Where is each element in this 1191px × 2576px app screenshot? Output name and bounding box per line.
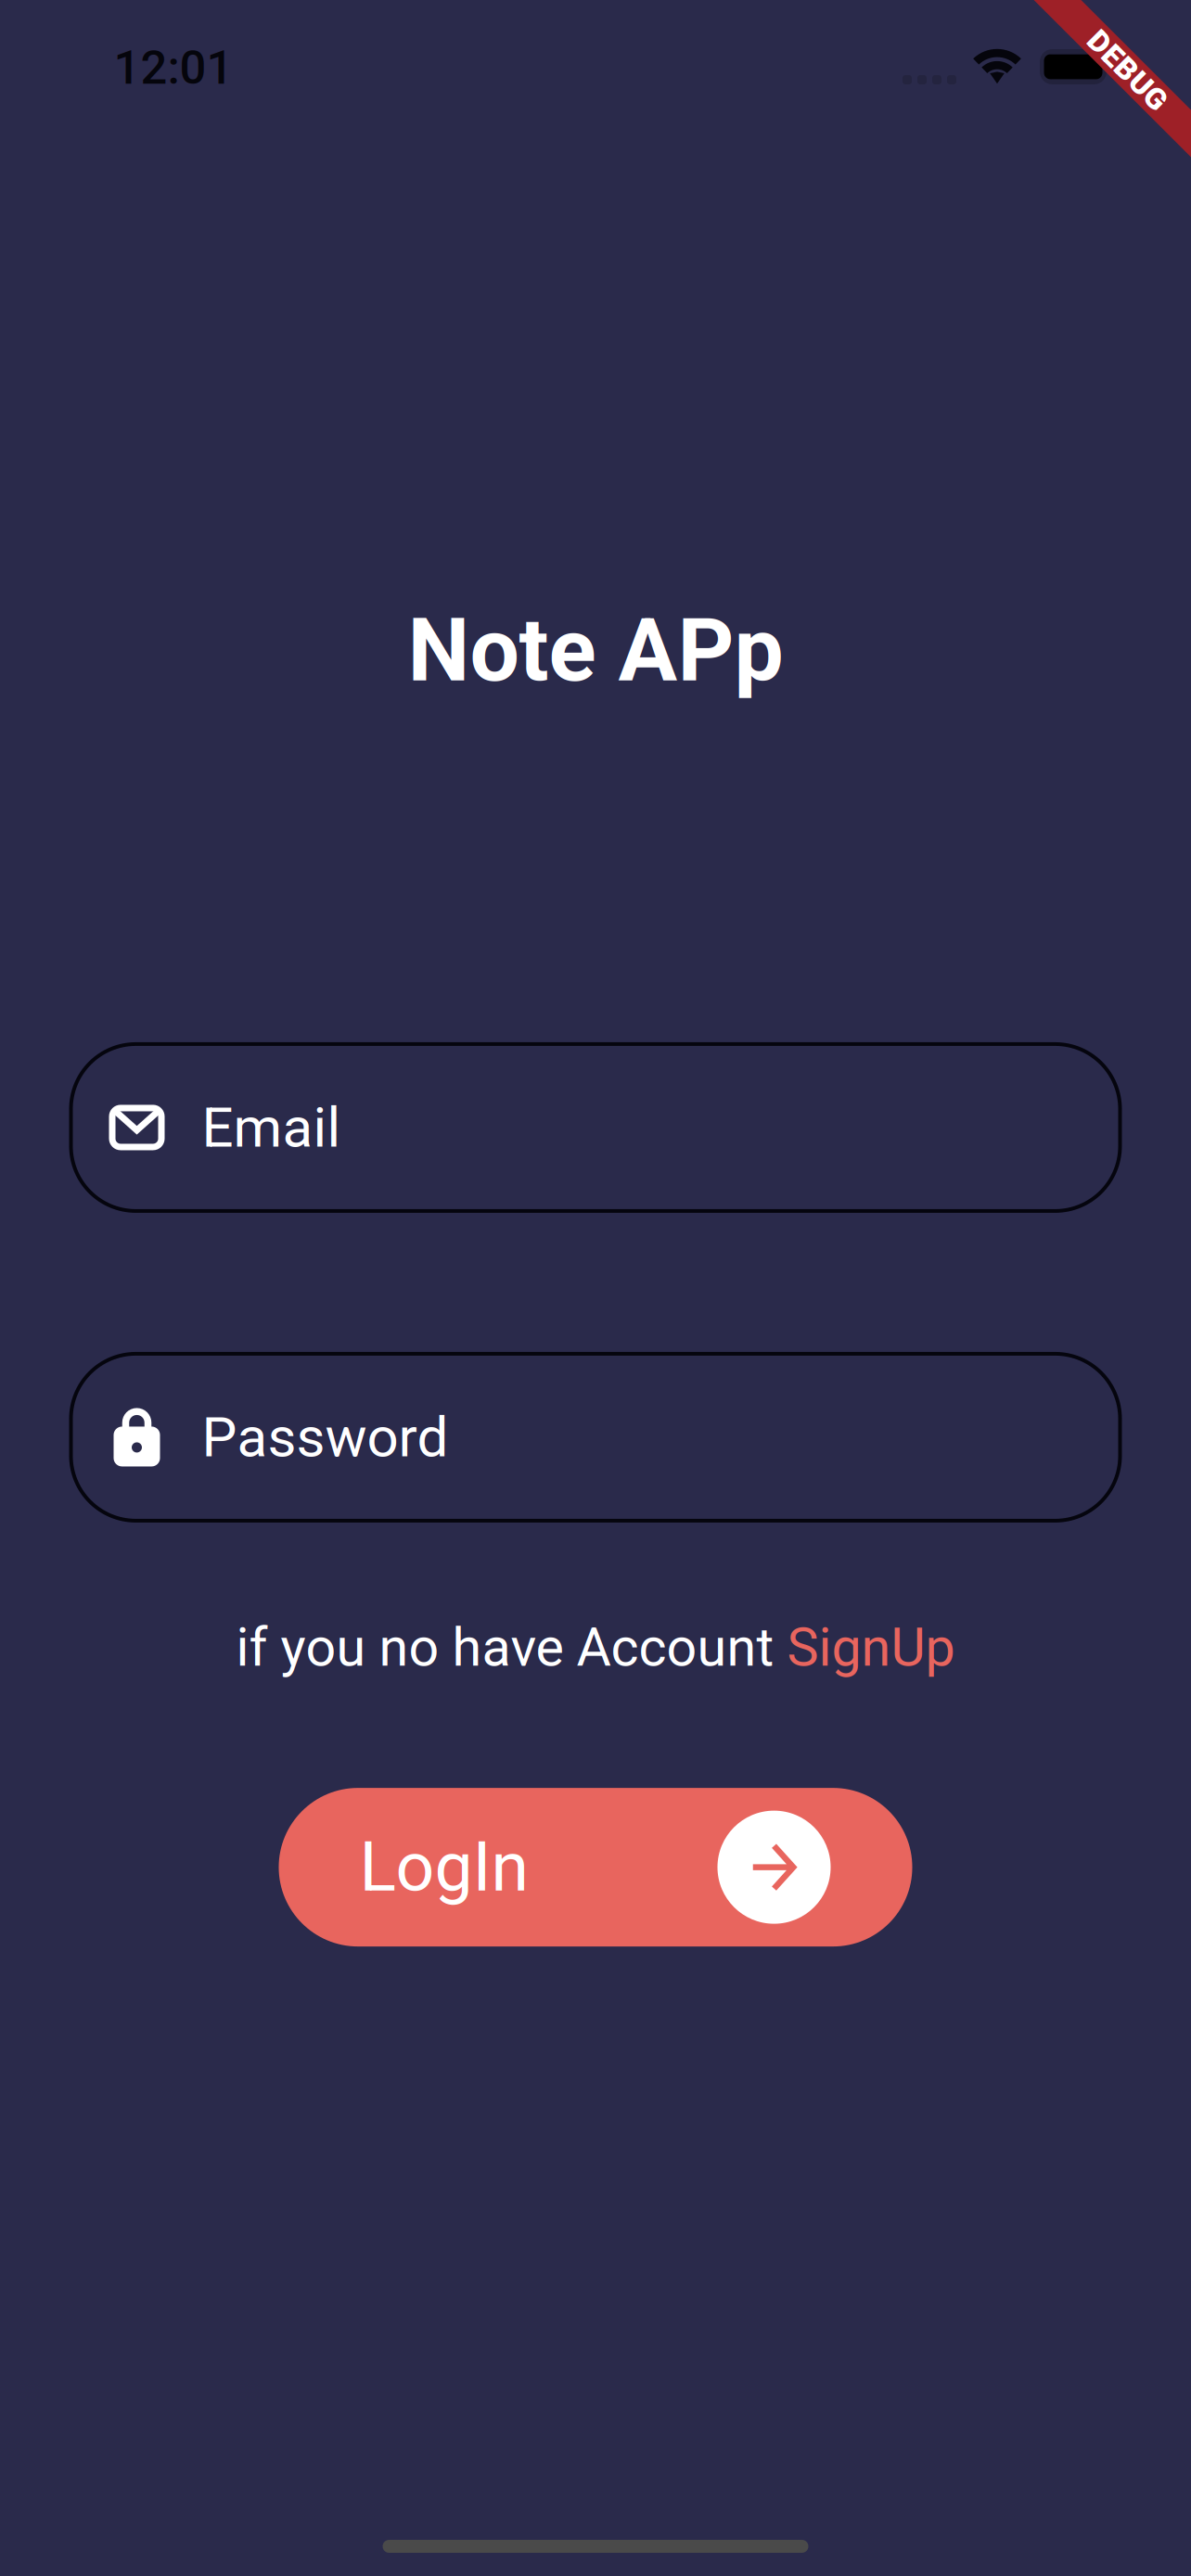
staticText: Email [202,1095,341,1160]
staticText: DEBUG [1078,52,1178,89]
staticText: Password [202,1405,448,1470]
staticText: Note APp [408,599,783,702]
staticText: SignUp [787,1616,955,1678]
button[interactable]: Password [71,1354,1120,1521]
button[interactable]: SignUp [787,1616,955,1678]
staticText: 12:01 [114,40,233,95]
staticText: LogIn [359,1827,528,1907]
button[interactable]: Email [71,1044,1120,1211]
staticText: if you no have Account [236,1616,787,1678]
button[interactable]: LogIn [279,1788,912,1946]
